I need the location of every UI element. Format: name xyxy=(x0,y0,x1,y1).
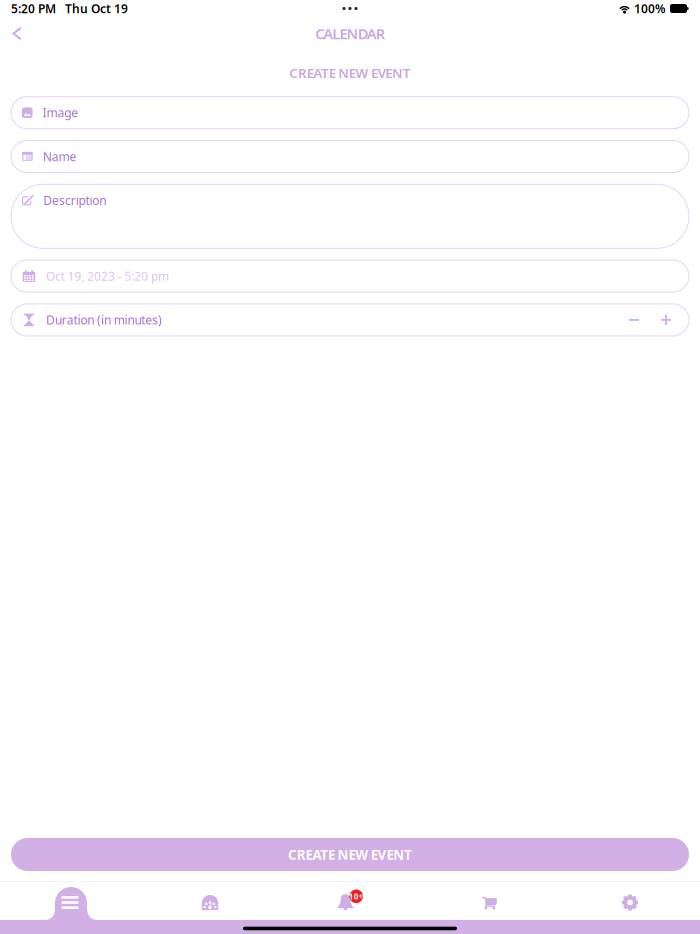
button[interactable]: Notifications xyxy=(280,882,420,922)
button[interactable]: CREATE NEW EVENT xyxy=(11,838,689,871)
button[interactable]: Decrease duration xyxy=(622,308,646,332)
staticText: CALENDAR xyxy=(315,24,385,43)
button[interactable]: Settings xyxy=(560,882,700,922)
staticText: Description xyxy=(43,192,106,208)
staticText: CREATE NEW EVENT xyxy=(288,846,412,863)
staticText: CREATE NEW EVENT xyxy=(289,64,411,82)
button[interactable]: Back xyxy=(0,17,34,50)
button[interactable]: Increase duration xyxy=(654,308,678,332)
button[interactable]: Menu xyxy=(0,882,140,922)
staticText: 100% xyxy=(634,0,666,16)
staticText: 5:20 PM xyxy=(11,0,56,16)
staticText: Thu Oct 19 xyxy=(65,0,128,16)
staticText: 10+ xyxy=(349,891,364,902)
button[interactable]: Dashboard xyxy=(140,882,280,922)
button[interactable]: Cart xyxy=(420,882,560,922)
staticText: Oct 19, 2023 - 5:20 pm xyxy=(46,268,169,284)
staticText: Duration (in minutes) xyxy=(46,312,162,328)
staticText: Name xyxy=(43,148,76,164)
staticText: Image xyxy=(43,105,78,121)
